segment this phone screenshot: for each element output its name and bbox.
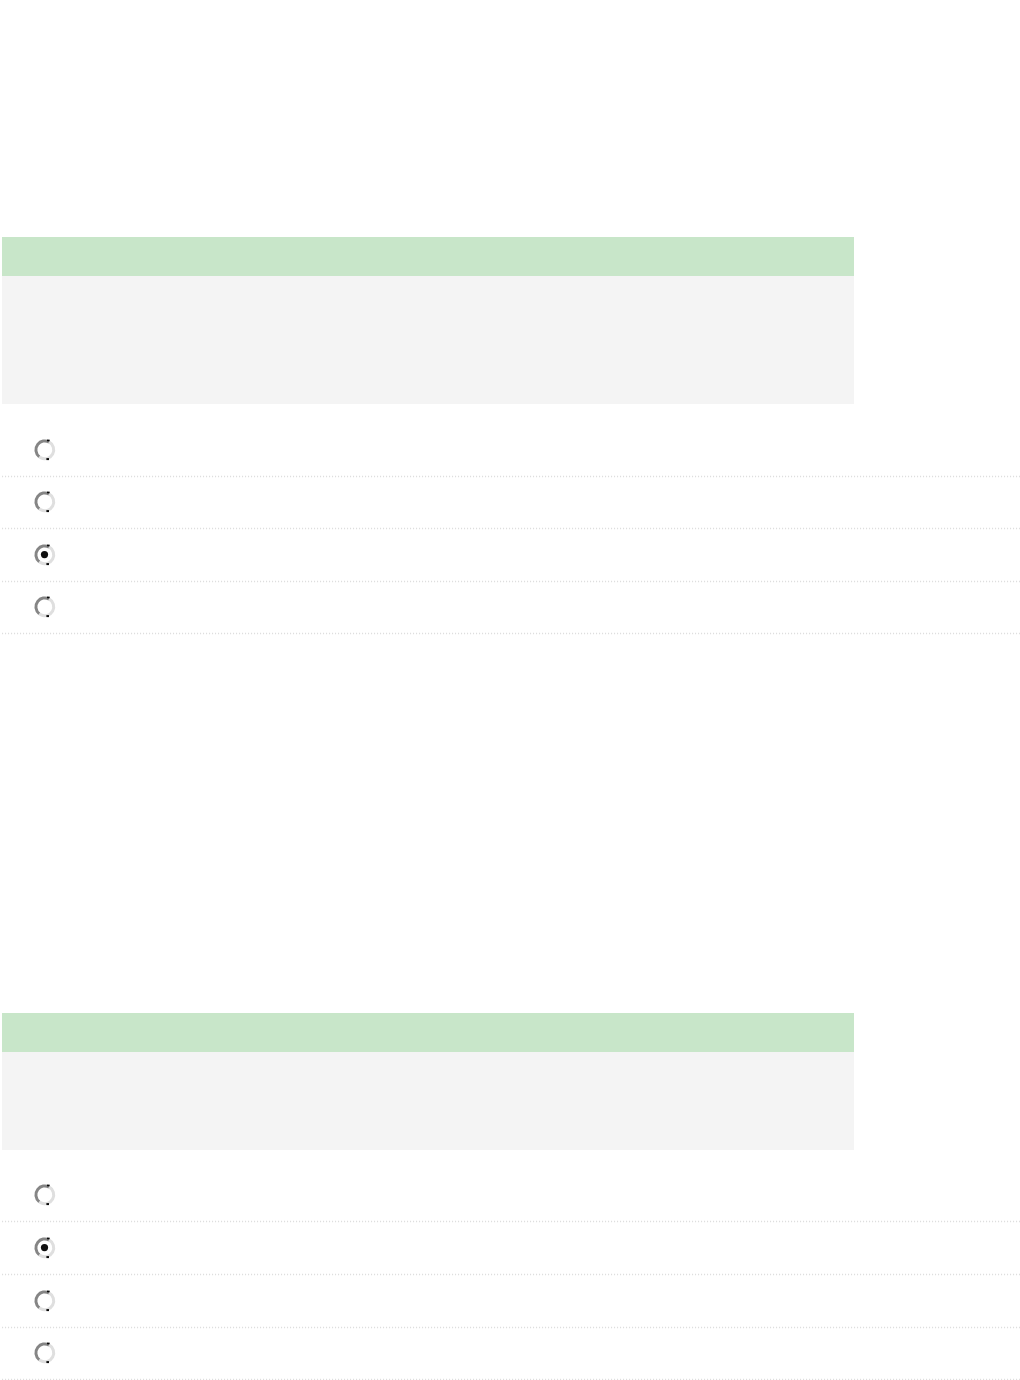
button[interactable]: Question 2 option A [0, 1170, 1020, 1222]
button[interactable]: Question 1 option D [0, 582, 1020, 634]
button[interactable]: Question 2 [2, 1013, 854, 1150]
button[interactable]: Question 2 option D [0, 1328, 1020, 1380]
button[interactable]: Question 1 option A [0, 425, 1020, 477]
button[interactable]: Question 2 option B, selected [0, 1223, 1020, 1275]
button[interactable]: Question 1 [2, 237, 854, 404]
button[interactable]: Question 1 option C, selected [0, 530, 1020, 582]
button[interactable]: Question 2 option C [0, 1276, 1020, 1328]
button[interactable]: Question 1 option B [0, 477, 1020, 529]
